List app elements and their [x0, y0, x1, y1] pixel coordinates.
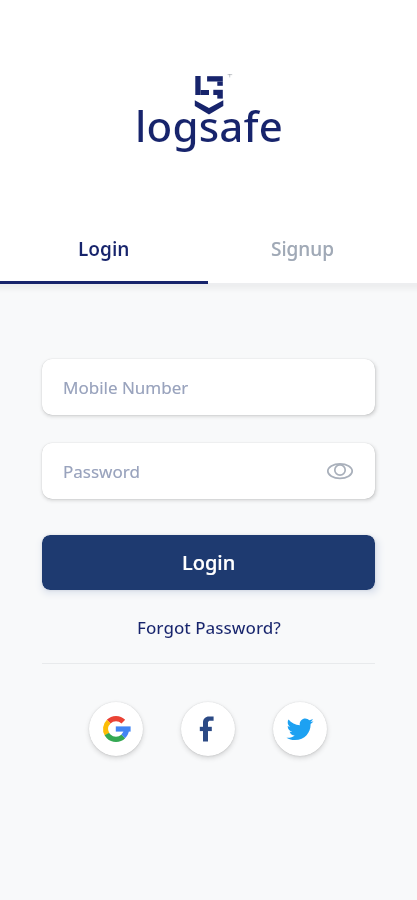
staticText: Mobile Number	[63, 376, 189, 399]
button[interactable]: Password	[42, 443, 375, 499]
button[interactable]	[89, 702, 143, 756]
button[interactable]	[273, 702, 327, 756]
button[interactable]: Forgot Password?	[137, 616, 281, 639]
button[interactable]: Login	[42, 535, 375, 590]
button[interactable]: Mobile Number	[42, 359, 375, 415]
staticText: Login	[182, 549, 236, 576]
staticText: Forgot Password?	[137, 616, 281, 639]
staticText: logsafe	[135, 97, 283, 154]
button[interactable]: Login	[0, 228, 208, 270]
button[interactable]	[181, 702, 235, 756]
staticText: Login	[78, 236, 130, 262]
button[interactable]: Signup	[208, 228, 397, 270]
staticText: Password	[63, 460, 140, 483]
staticText: Signup	[271, 236, 334, 262]
